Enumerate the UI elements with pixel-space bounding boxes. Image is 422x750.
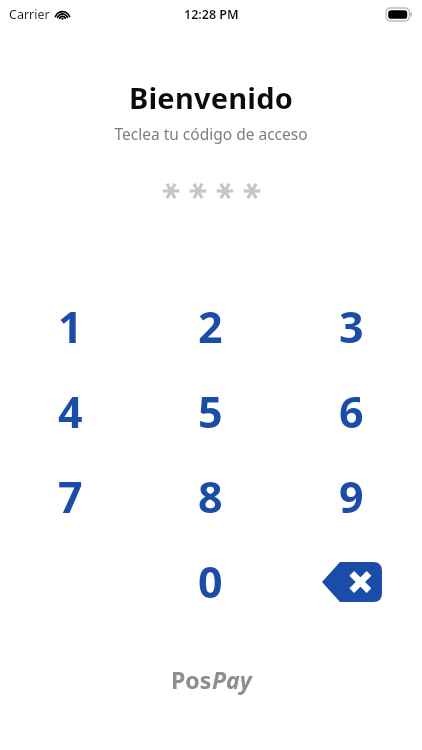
staticText: 9 <box>339 467 364 526</box>
staticText: 0 <box>198 552 223 611</box>
button[interactable]: 9 <box>281 454 422 539</box>
staticText: 3 <box>339 297 364 356</box>
staticText: Teclea tu código de acceso <box>0 123 422 144</box>
staticText: 8 <box>198 467 223 526</box>
button[interactable]: 1 <box>0 284 140 369</box>
staticText: 7 <box>58 467 83 526</box>
staticText: 1 <box>58 297 83 356</box>
button[interactable]: 8 <box>140 454 281 539</box>
button[interactable]: 5 <box>140 369 281 454</box>
button[interactable]: 0 <box>140 539 281 624</box>
button[interactable]: 4 <box>0 369 140 454</box>
button[interactable]: Borrar <box>281 539 422 624</box>
staticText: Carrier <box>9 6 50 23</box>
button[interactable]: 3 <box>281 284 422 369</box>
staticText: 2 <box>198 297 223 356</box>
button[interactable]: 6 <box>281 369 422 454</box>
staticText: 12:28 PM <box>184 6 239 23</box>
staticText: 5 <box>198 382 223 441</box>
staticText: 4 <box>58 382 83 441</box>
button[interactable]: 2 <box>140 284 281 369</box>
staticText: Pay <box>212 664 252 695</box>
staticText: Pos <box>171 664 212 695</box>
button[interactable]: 7 <box>0 454 140 539</box>
staticText: Bienvenido <box>0 78 422 117</box>
staticText: 6 <box>339 382 364 441</box>
